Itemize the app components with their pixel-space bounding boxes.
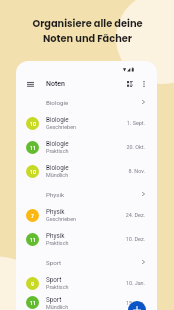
staticText: 24. Dez. xyxy=(125,212,145,218)
staticText: 10. Dez. xyxy=(125,236,145,242)
button[interactable]: 11 xyxy=(16,295,157,310)
button[interactable]: Menü xyxy=(23,79,38,89)
button[interactable]: 11 xyxy=(16,135,157,159)
button[interactable]: Biologie xyxy=(16,91,157,111)
staticText: Praktisch xyxy=(46,240,69,246)
staticText: 15. Jan. xyxy=(125,300,145,306)
button[interactable]: Sport xyxy=(16,251,157,271)
staticText: Biologie xyxy=(46,164,69,171)
staticText: 11 xyxy=(30,237,36,243)
staticText: 20. Okt. xyxy=(126,144,145,150)
staticText: 10 xyxy=(30,169,36,175)
button[interactable]: Sortieren xyxy=(123,79,137,89)
staticText: Mündlich xyxy=(46,172,69,178)
button[interactable]: 11 xyxy=(16,227,157,251)
staticText: Mündlich xyxy=(46,304,69,310)
staticText: Sport xyxy=(46,259,61,266)
staticText: Geschrieben xyxy=(46,124,76,130)
staticText: 7 xyxy=(31,213,34,219)
staticText: Geschrieben xyxy=(46,216,76,222)
staticText: Physik xyxy=(46,208,65,215)
staticText: 8. Nov. xyxy=(128,168,145,174)
staticText: Biologie xyxy=(46,116,69,123)
staticText: 11 xyxy=(30,300,36,306)
staticText: Noten xyxy=(46,80,65,88)
button[interactable]: 10 xyxy=(16,159,157,183)
button[interactable]: 10 xyxy=(16,111,157,135)
staticText: 1. Sept. xyxy=(126,120,145,126)
staticText: 11 xyxy=(30,145,36,151)
staticText: 10. Jan. xyxy=(125,280,145,286)
button[interactable]: Mehr Optionen xyxy=(138,79,150,89)
staticText: Sport xyxy=(46,276,62,283)
staticText: Praktisch xyxy=(46,148,69,154)
staticText: Biologie xyxy=(46,99,69,106)
staticText: 10 xyxy=(30,121,36,127)
button[interactable]: 9 xyxy=(16,271,157,295)
staticText: Organisiere alle deine Noten und Fächer xyxy=(32,17,143,46)
staticText: Physik xyxy=(46,191,65,198)
staticText: 9 xyxy=(31,281,34,287)
staticText: Sport xyxy=(46,296,62,303)
button[interactable]: Note hinzufügen xyxy=(128,301,146,310)
button[interactable]: 7 xyxy=(16,203,157,227)
button[interactable]: Physik xyxy=(16,183,157,203)
staticText: Praktisch xyxy=(46,284,69,290)
staticText: Physik xyxy=(46,232,65,239)
staticText: Biologie xyxy=(46,140,69,147)
